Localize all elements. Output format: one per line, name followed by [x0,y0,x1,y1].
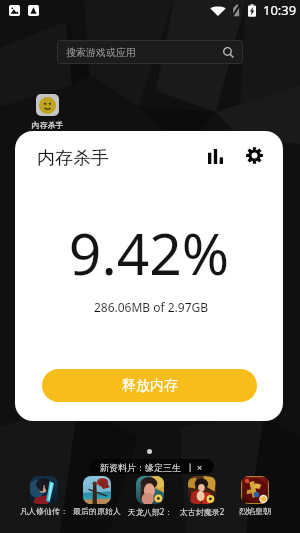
button[interactable]: 天龙八部2： [122,476,178,522]
staticText: 内存杀手 [37,147,109,170]
staticText: 286.06MB of 2.97GB [17,299,283,315]
staticText: 释放内存 [122,377,178,395]
staticText: 新资料片：缘定三生 丨 × [100,461,203,473]
button[interactable]: 太古封魔录2 [174,476,230,522]
staticText: 搜索游戏或应用 [66,46,136,59]
button[interactable]: Statistics [202,143,228,169]
other: Search [222,46,235,59]
button[interactable]: 搜索游戏或应用 [57,40,243,64]
staticText: 9.42% [15,214,283,292]
button[interactable]: 最后的原始人 [69,476,125,522]
button[interactable]: 内存杀手 [26,94,69,130]
button[interactable]: 凡人修仙传： [16,476,72,522]
button[interactable]: 释放内存 [42,369,257,402]
button[interactable]: Settings [241,142,267,168]
staticText: 凡人修仙传： [16,506,72,516]
staticText: 天龙八部2： [122,506,178,517]
staticText: 烈焰皇朝 [227,506,283,516]
staticText: 最后的原始人 [69,506,125,516]
button[interactable]: 烈焰皇朝 [227,476,283,522]
button[interactable]: 新资料片：缘定三生 丨 × [89,459,214,474]
staticText: 太古封魔录2 [174,506,230,517]
staticText: 内存杀手 [26,120,69,130]
staticText: 10:39 [263,1,297,19]
